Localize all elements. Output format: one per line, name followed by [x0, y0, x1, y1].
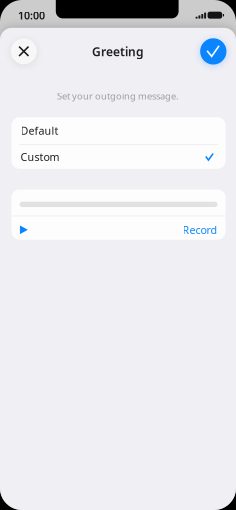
staticText: Greeting [92, 43, 144, 59]
button[interactable]: Record [11, 216, 225, 240]
staticText: 10:00 [18, 8, 45, 22]
button[interactable]: Default [11, 117, 225, 144]
button[interactable]: Done [200, 38, 226, 64]
staticText: Record [182, 223, 217, 237]
staticText: Set your outgoing message. [57, 90, 179, 102]
staticText: Custom [20, 150, 59, 164]
staticText: Default [20, 124, 58, 138]
button[interactable]: Close [11, 38, 37, 64]
button[interactable]: Custom [11, 145, 225, 169]
